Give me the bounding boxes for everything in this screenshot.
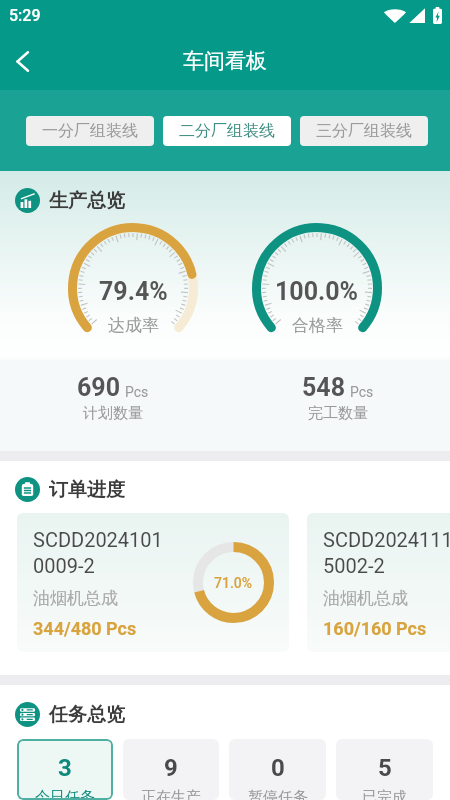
- staticText: 车间看板: [183, 48, 267, 74]
- staticText: 一分厂组装线: [42, 121, 138, 141]
- staticText: 690: [77, 373, 121, 402]
- staticText: 订单进度: [49, 478, 125, 502]
- staticText: 3: [58, 754, 72, 782]
- staticText: 暂停任务: [248, 788, 308, 800]
- staticText: 生产总览: [49, 189, 125, 213]
- staticText: 油烟机总成: [323, 588, 408, 609]
- staticText: SCDD2024101 0009-2: [33, 528, 183, 577]
- staticText: 任务总览: [49, 703, 125, 727]
- staticText: 二分厂组装线: [179, 121, 275, 141]
- staticText: SCDD2024111 5002-2: [323, 528, 450, 577]
- button[interactable]: SCDD2024111 5002-2: [307, 513, 450, 652]
- button[interactable]: 二分厂组装线: [163, 116, 291, 146]
- button[interactable]: 3: [17, 739, 113, 800]
- staticText: 5:29: [9, 6, 41, 25]
- button[interactable]: 0: [229, 739, 326, 800]
- staticText: 正在生产: [141, 788, 201, 800]
- staticText: 100.0%: [275, 277, 359, 306]
- staticText: 达成率: [108, 315, 159, 336]
- staticText: 已完成: [362, 788, 407, 800]
- button[interactable]: 一分厂组装线: [26, 116, 154, 146]
- button[interactable]: 9: [123, 739, 219, 800]
- staticText: 三分厂组装线: [316, 121, 412, 141]
- staticText: Pcs: [350, 384, 374, 400]
- staticText: 完工数量: [308, 404, 368, 423]
- staticText: 油烟机总成: [33, 588, 118, 609]
- staticText: 344/480 Pcs: [33, 618, 137, 639]
- staticText: 79.4%: [99, 277, 168, 306]
- staticText: 0: [271, 754, 285, 782]
- staticText: 今日任务: [35, 788, 95, 800]
- button[interactable]: Back: [0, 38, 45, 84]
- staticText: 5: [378, 754, 392, 782]
- staticText: Pcs: [125, 384, 149, 400]
- button[interactable]: SCDD2024101 0009-2: [17, 513, 289, 652]
- staticText: 计划数量: [83, 404, 143, 423]
- button[interactable]: 5: [336, 739, 433, 800]
- staticText: 合格率: [292, 315, 343, 336]
- staticText: 548: [302, 373, 346, 402]
- staticText: 71.0%: [214, 575, 253, 591]
- staticText: 160/160 Pcs: [323, 618, 427, 639]
- staticText: 9: [164, 754, 178, 782]
- button[interactable]: 三分厂组装线: [300, 116, 428, 146]
